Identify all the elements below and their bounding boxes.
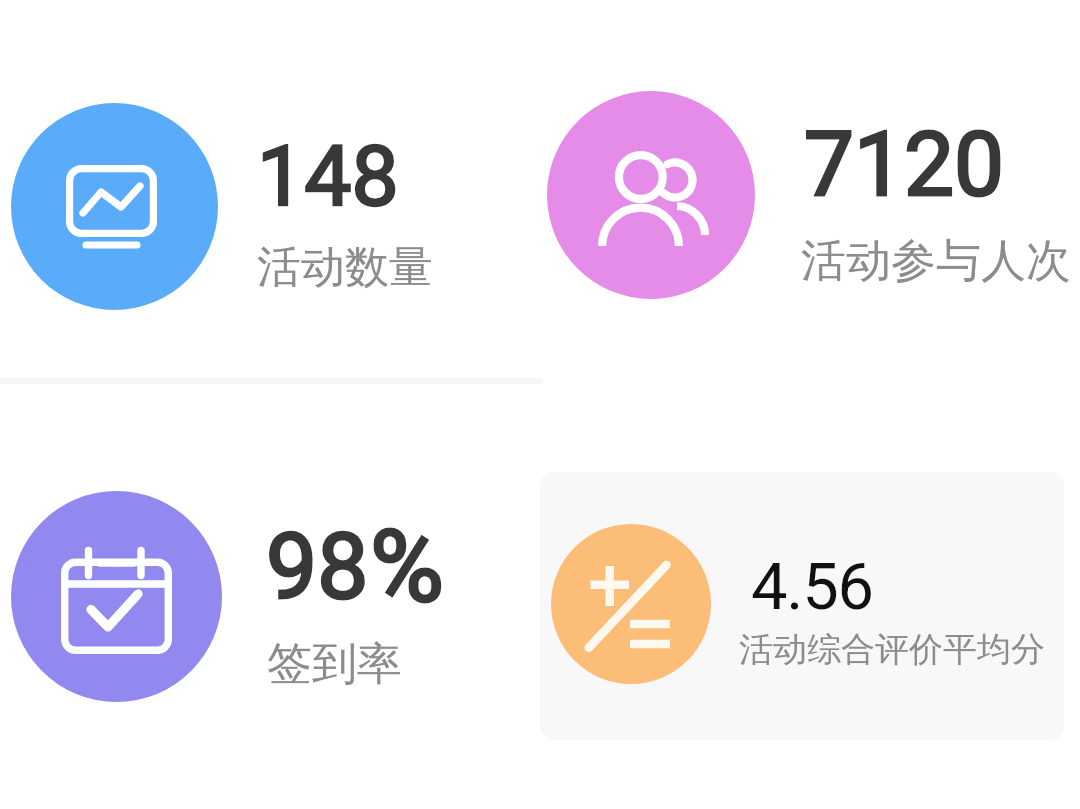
staticText: 148 <box>257 127 399 225</box>
staticText: 4.56 <box>751 549 873 625</box>
other: 活动综合评价平均分 <box>551 524 711 684</box>
staticText: 7120 <box>804 112 1005 216</box>
button[interactable]: 签到率 <box>0 485 470 720</box>
button[interactable]: 活动参与人次 <box>540 85 1080 310</box>
other: 活动数量 <box>11 103 218 310</box>
other: 活动参与人次 <box>547 91 755 299</box>
staticText: 活动数量 <box>257 240 433 295</box>
staticText: % <box>370 507 444 625</box>
staticText: 98 <box>266 514 369 621</box>
staticText: 活动参与人次 <box>801 233 1071 290</box>
button[interactable]: 活动综合评价平均分 <box>540 500 1080 710</box>
staticText: 活动综合评价平均分 <box>739 628 1045 671</box>
other: 签到率 <box>11 491 222 702</box>
button[interactable]: 活动数量 <box>0 95 470 320</box>
staticText: 签到率 <box>267 636 402 693</box>
